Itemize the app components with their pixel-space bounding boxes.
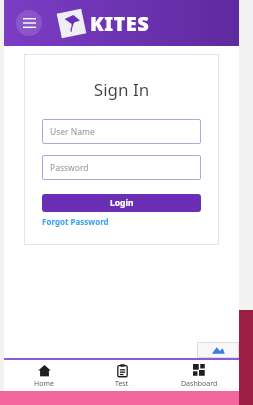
staticText: User Name — [50, 126, 95, 138]
button[interactable]: Login — [42, 194, 201, 212]
staticText: Test — [115, 379, 129, 389]
staticText: Password — [50, 162, 89, 174]
staticText: Sign In — [42, 78, 201, 101]
staticText: Dashboard — [181, 379, 218, 389]
button[interactable]: Test — [85, 360, 159, 391]
staticText: Forgot Password — [42, 216, 109, 227]
button[interactable]: User Name — [42, 119, 201, 144]
button[interactable]: Password — [42, 155, 201, 180]
button[interactable]: Menu — [16, 10, 42, 36]
button[interactable]: Forgot Password — [42, 216, 109, 227]
button[interactable]: Dashboard — [162, 360, 236, 391]
staticText: Login — [110, 197, 134, 209]
button[interactable]: Home — [7, 360, 81, 391]
button[interactable]: reCAPTCHA — [197, 342, 239, 358]
staticText: KITES — [90, 10, 150, 37]
staticText: Home — [34, 379, 54, 389]
